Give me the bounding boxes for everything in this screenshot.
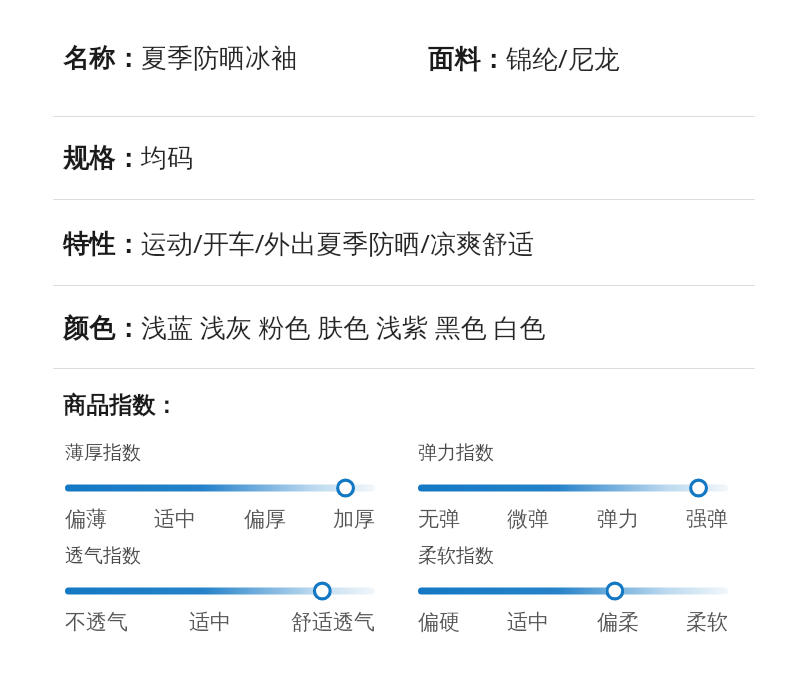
staticText: 颜色：浅蓝 浅灰 粉色 肤色 浅紫 黑色 白色 <box>63 309 546 345</box>
staticText: 弹力指数 <box>418 441 494 465</box>
staticText: 适中 <box>189 609 231 635</box>
staticText: 不透气 <box>65 609 128 635</box>
staticText: 薄厚指数 <box>65 441 141 465</box>
button[interactable]: 颜色：浅蓝 浅灰 粉色 肤色 浅紫 黑色 白色 <box>0 286 790 368</box>
staticText: 微弹 <box>507 506 549 532</box>
staticText: 偏硬 <box>418 609 460 635</box>
button[interactable]: 柔软指数 <box>418 579 728 603</box>
button[interactable]: 透气指数 <box>65 579 375 603</box>
staticText: 面料：锦纶/尼龙 <box>428 40 620 76</box>
button[interactable]: 规格：均码 <box>0 117 790 199</box>
staticText: 适中 <box>154 506 196 532</box>
staticText: 偏薄 <box>65 506 107 532</box>
button[interactable]: 名称：夏季防晒冰袖 <box>0 0 790 116</box>
staticText: 柔软指数 <box>418 544 494 568</box>
staticText: 弹力 <box>597 506 639 532</box>
staticText: 商品指数： <box>63 391 178 420</box>
staticText: 名称：夏季防晒冰袖 <box>63 42 297 75</box>
staticText: 偏厚 <box>244 506 286 532</box>
staticText: 强弹 <box>686 506 728 532</box>
staticText: 加厚 <box>333 506 375 532</box>
staticText: 舒适透气 <box>291 609 375 635</box>
staticText: 规格：均码 <box>63 142 193 175</box>
staticText: 适中 <box>507 609 549 635</box>
staticText: 柔软 <box>686 609 728 635</box>
button[interactable]: 弹力指数 <box>418 476 728 500</box>
staticText: 透气指数 <box>65 544 141 568</box>
staticText: 偏柔 <box>597 609 639 635</box>
staticText: 特性：运动/开车/外出夏季防晒/凉爽舒适 <box>63 225 535 261</box>
button[interactable]: 特性：运动/开车/外出夏季防晒/凉爽舒适 <box>0 200 790 285</box>
button[interactable]: 薄厚指数 <box>65 476 375 500</box>
staticText: 无弹 <box>418 506 460 532</box>
